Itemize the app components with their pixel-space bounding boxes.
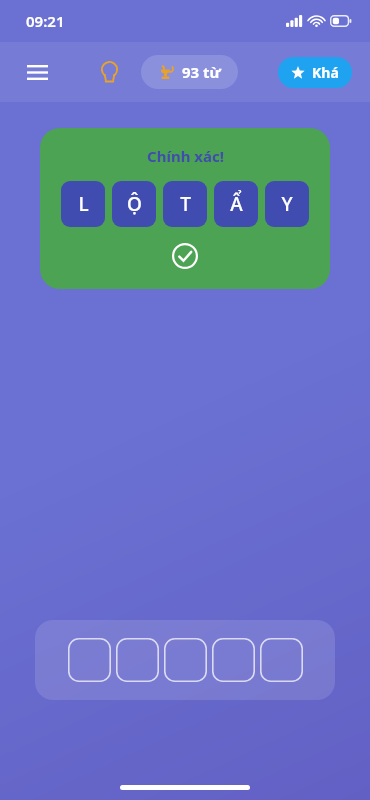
- staticText: Chính xác!: [147, 146, 224, 166]
- button[interactable]: Ẩ: [214, 181, 258, 227]
- staticText: 93 từ: [182, 62, 221, 82]
- button[interactable]: L: [61, 181, 105, 227]
- button[interactable]: Ộ: [112, 181, 156, 227]
- button[interactable]: Y: [265, 181, 309, 227]
- button[interactable]: 93 từ: [141, 55, 238, 89]
- staticText: Ẩ: [230, 191, 243, 217]
- button[interactable]: Correct: [168, 239, 202, 273]
- button[interactable]: [68, 638, 111, 682]
- button[interactable]: [164, 638, 207, 682]
- staticText: Ộ: [127, 191, 142, 217]
- button[interactable]: [212, 638, 255, 682]
- staticText: 09:21: [26, 11, 65, 31]
- button[interactable]: [260, 638, 303, 682]
- staticText: T: [180, 191, 191, 217]
- staticText: L: [78, 191, 89, 217]
- button[interactable]: [116, 638, 159, 682]
- button[interactable]: Menu: [18, 53, 56, 91]
- button[interactable]: [35, 620, 335, 700]
- staticText: Y: [281, 191, 293, 217]
- button[interactable]: T: [163, 181, 207, 227]
- staticText: Khá: [312, 63, 339, 82]
- button[interactable]: Chính xác!: [40, 128, 330, 289]
- button[interactable]: Hint: [90, 53, 128, 91]
- button[interactable]: Khá: [278, 57, 352, 88]
